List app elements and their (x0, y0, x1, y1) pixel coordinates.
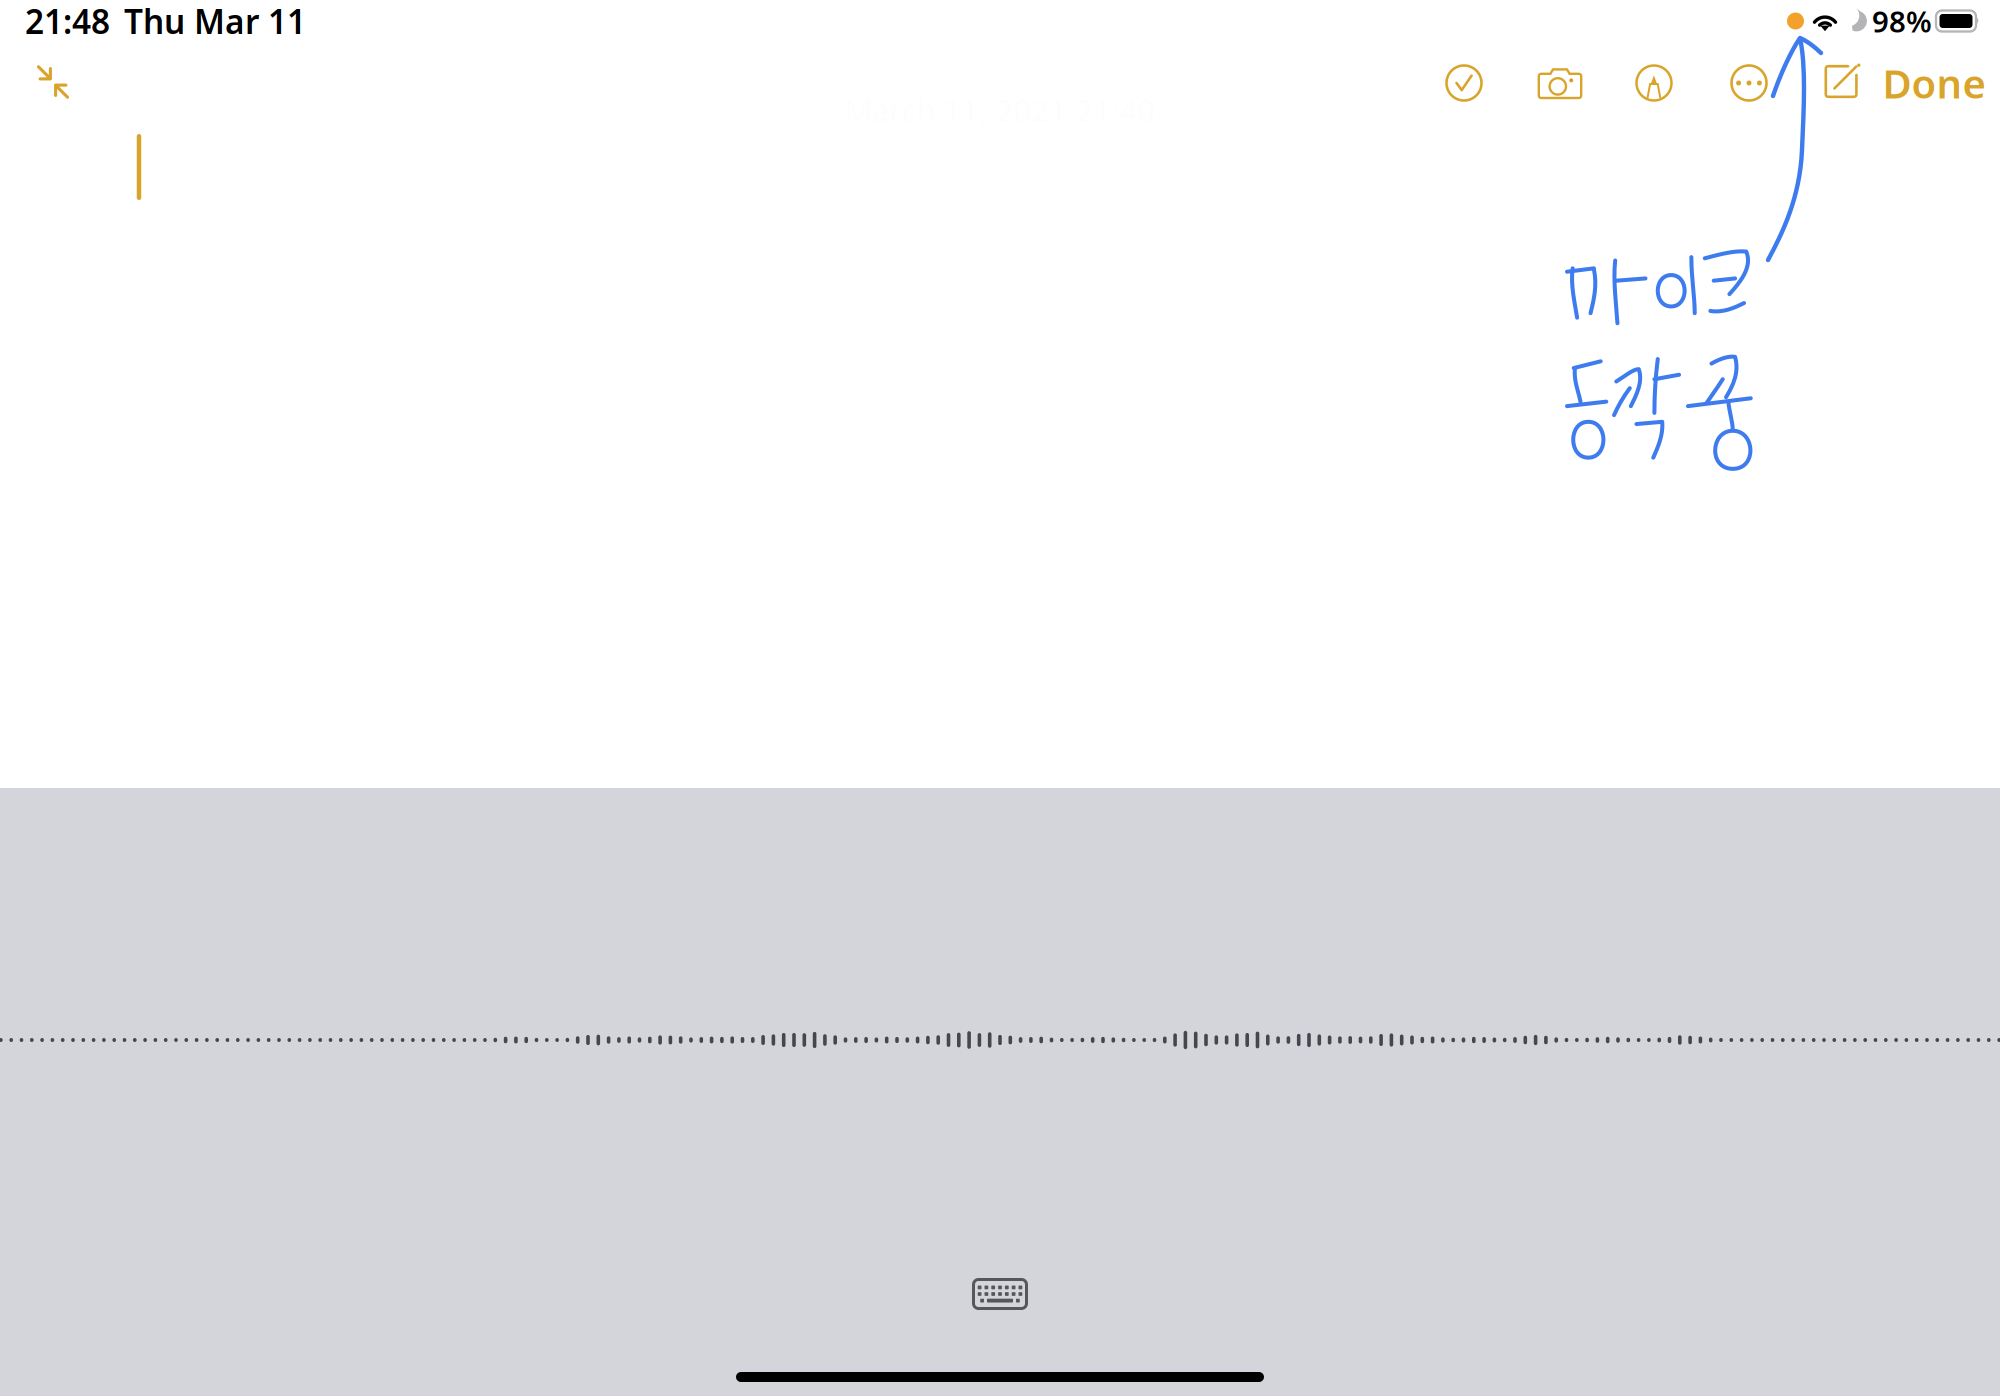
staticText: 21:48 (25, 0, 110, 43)
staticText: Thu Mar 11 (124, 0, 306, 43)
staticText: 98% (1872, 1, 1932, 40)
button[interactable]: Collapse note (22, 51, 84, 113)
button[interactable]: Markup (1623, 52, 1685, 114)
button[interactable]: More (1718, 52, 1780, 114)
button[interactable]: Camera (1529, 52, 1591, 114)
button[interactable]: Checklist (1433, 52, 1495, 114)
button[interactable]: Show keyboard (961, 1265, 1039, 1323)
button[interactable]: Done (1864, 55, 2000, 111)
button[interactable]: New note (1812, 52, 1874, 114)
staticText: Done (1882, 56, 1985, 109)
